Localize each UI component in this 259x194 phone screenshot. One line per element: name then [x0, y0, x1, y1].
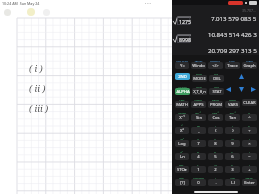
staticText: INS [214, 72, 218, 75]
button[interactable]: (-) [225, 179, 240, 186]
button[interactable]: 7 [191, 140, 206, 147]
button[interactable]: ^ [242, 114, 257, 121]
button[interactable]: 6 [225, 153, 240, 160]
button[interactable]: MODE [192, 75, 207, 82]
staticText: eˣ [180, 150, 183, 153]
staticText: ( iii ) [29, 102, 49, 114]
button[interactable]: Left [225, 86, 232, 93]
staticText: PRGM [210, 102, 222, 108]
button[interactable]: − [242, 153, 257, 160]
button[interactable]: PRGM [208, 101, 223, 108]
button[interactable]: Trace [225, 62, 240, 69]
button[interactable]: 3 [225, 166, 240, 173]
staticText: V [214, 137, 216, 140]
staticText: APPS [193, 102, 204, 108]
button[interactable]: . [208, 179, 223, 186]
button[interactable]: Highlighter [27, 8, 35, 16]
button[interactable]: Cos [208, 114, 223, 121]
button[interactable]: Y= [175, 62, 189, 69]
staticText: N [231, 163, 233, 166]
button[interactable]: ÷ [242, 127, 257, 134]
staticText: 5 [214, 154, 217, 160]
button[interactable]: + [242, 166, 257, 173]
button[interactable]: 2ND [175, 73, 190, 80]
staticText: , [198, 128, 200, 134]
button[interactable]: Enter [242, 179, 257, 186]
button[interactable]: 9 [225, 140, 240, 147]
staticText: 4 [197, 154, 200, 160]
button[interactable]: Tan [225, 114, 240, 121]
staticText: L [197, 163, 199, 166]
staticText: TEST [179, 98, 185, 101]
staticText: √ [181, 124, 183, 127]
staticText: Sin [196, 115, 202, 121]
staticText: π [248, 111, 250, 114]
button[interactable]: Right [250, 86, 257, 93]
button[interactable]: CLEAR [242, 99, 257, 106]
button[interactable]: ( [208, 127, 223, 134]
staticText: CALC [229, 59, 235, 62]
button[interactable]: DEL [209, 75, 224, 82]
staticText: Graph [243, 63, 256, 69]
staticText: TBLSET [194, 59, 203, 62]
staticText: QUIT [196, 72, 202, 75]
button[interactable]: Sin [191, 114, 206, 121]
staticText: ) [232, 128, 234, 134]
button[interactable]: ) [225, 127, 240, 134]
button[interactable]: 8 [208, 140, 223, 147]
button[interactable]: 0 [191, 179, 206, 186]
button[interactable]: 1 [191, 166, 206, 173]
staticText: Tan [229, 115, 236, 121]
button[interactable]: Ln [175, 153, 189, 160]
staticText: ANGLE [194, 98, 202, 101]
staticText: Enter [244, 180, 255, 186]
staticText: SOLVE [245, 176, 253, 179]
button[interactable]: ALPHA [175, 88, 190, 95]
staticText: FORMAT [210, 59, 220, 62]
staticText: Log [178, 141, 186, 147]
button[interactable]: Up [238, 73, 245, 80]
button[interactable]: VARS [225, 101, 240, 108]
staticText: Y= [180, 63, 185, 69]
staticText: MODE [193, 76, 206, 82]
staticText: </> [212, 63, 219, 69]
staticText: EE [197, 124, 200, 127]
staticText: X² [180, 128, 184, 134]
button[interactable]: X,T,θ,n [192, 88, 207, 95]
staticText: 35.707... [242, 8, 256, 13]
button[interactable]: STAT [209, 88, 224, 95]
button[interactable]: × [242, 140, 257, 147]
staticText: 8998 [179, 36, 191, 43]
button[interactable]: X² [175, 127, 189, 134]
button[interactable]: Window [191, 62, 206, 69]
button[interactable]: APPS [191, 101, 206, 108]
button[interactable]: Eraser [43, 9, 50, 16]
staticText: 7 [197, 141, 200, 147]
button[interactable]: MATH [175, 101, 189, 108]
staticText: 10:24 AM Sun May 24 [2, 1, 40, 6]
button[interactable]: X⁻¹ [175, 114, 189, 121]
staticText: MATRX [178, 111, 186, 114]
button[interactable]: Pen [4, 9, 11, 16]
staticText: } [249, 163, 250, 166]
staticText: 10ˣ [180, 137, 184, 140]
staticText: STO▸ [177, 167, 187, 173]
staticText: X⁻¹ [179, 115, 185, 121]
staticText: CLEAR [243, 100, 256, 106]
button[interactable]: Log [175, 140, 189, 147]
button[interactable]: STO▸ [175, 166, 189, 173]
staticText: 10.843 514 426 3 [208, 30, 257, 38]
button[interactable]: 5 [208, 153, 223, 160]
staticText: VARS [228, 102, 238, 108]
button[interactable]: 4 [191, 153, 206, 160]
button[interactable]: 2 [208, 166, 223, 173]
staticText: [ [249, 137, 250, 140]
staticText: ÷ [248, 128, 251, 134]
button[interactable]: Down [238, 86, 245, 93]
button[interactable]: [?] [175, 179, 189, 186]
staticText: DEL [213, 76, 221, 82]
button[interactable]: , [191, 127, 206, 134]
button[interactable]: </> [208, 62, 223, 69]
staticText: × [248, 141, 251, 147]
button[interactable]: Graph [242, 62, 257, 69]
